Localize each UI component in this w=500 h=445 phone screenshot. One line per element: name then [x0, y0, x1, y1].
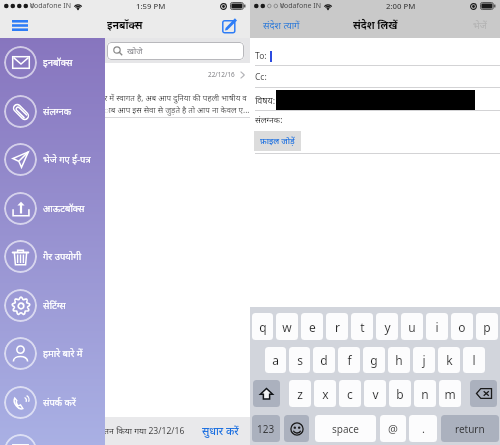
staticText: j — [422, 352, 426, 368]
button[interactable]: सेटिंग्स — [0, 282, 105, 328]
staticText: o — [458, 319, 466, 335]
button[interactable]: फ़ाइल जोड़ें — [254, 131, 301, 151]
button[interactable]: Return — [441, 415, 499, 442]
button[interactable]: b — [389, 380, 411, 407]
staticText: . — [422, 421, 425, 436]
staticText: f — [347, 352, 352, 368]
button[interactable]: Emoji — [284, 415, 309, 442]
staticText: भेजें — [473, 19, 487, 32]
button[interactable]: संलग्नक — [0, 88, 105, 134]
staticText: 1:59 PM — [136, 1, 166, 12]
button[interactable]: l — [463, 347, 485, 373]
staticText: संलग्नक — [43, 105, 72, 118]
staticText: n — [421, 386, 429, 402]
staticText: गैर उपयोगी — [43, 250, 82, 263]
button[interactable]: p — [476, 313, 498, 340]
button[interactable]: Shift — [253, 380, 280, 407]
button[interactable]: संपर्क करें — [0, 379, 105, 425]
staticText: संलग्नक: — [255, 114, 283, 126]
button[interactable] — [0, 427, 105, 445]
button[interactable]: सुधार करें — [202, 424, 239, 438]
button[interactable]: z — [289, 380, 311, 407]
button[interactable]: x — [314, 380, 336, 407]
button[interactable]: Compose — [219, 15, 239, 35]
button[interactable]: m — [439, 380, 461, 407]
staticText: y — [384, 319, 391, 335]
staticText: q — [259, 319, 267, 335]
staticText: र में स्वागत है, अब आप दुनिया की पहली भा… — [104, 92, 247, 103]
staticText: a — [272, 352, 279, 368]
button[interactable]: q — [252, 313, 273, 340]
staticText: भेजे गए ई-पत्र — [43, 153, 91, 166]
button[interactable]: h — [388, 347, 410, 373]
button[interactable]: @ — [380, 415, 406, 442]
staticText: h — [395, 352, 403, 368]
button[interactable]: w — [276, 313, 298, 340]
button[interactable]: 22/12/16 — [0, 63, 250, 118]
staticText: r — [335, 319, 340, 335]
button[interactable]: Numbers — [252, 415, 280, 442]
staticText: Cc: — [255, 71, 267, 83]
staticText: p — [483, 319, 491, 335]
button[interactable]: आऊटबॉक्स — [0, 185, 105, 231]
button[interactable]: j — [413, 347, 435, 373]
staticText: d — [320, 352, 328, 368]
staticText: t — [360, 319, 365, 335]
staticText: हमारे बारे में — [43, 347, 83, 360]
staticText: g — [370, 352, 378, 368]
button[interactable]: k — [438, 347, 460, 373]
button[interactable]: Menu — [8, 13, 32, 37]
staticText: @ — [388, 421, 398, 436]
button[interactable]: भेजे गए ई-पत्र — [0, 136, 105, 182]
button[interactable]: c — [339, 380, 361, 407]
staticText: z — [297, 386, 303, 402]
button[interactable]: o — [451, 313, 473, 340]
staticText: space — [332, 422, 359, 436]
staticText: i — [435, 319, 439, 335]
button[interactable]: f — [338, 347, 360, 373]
button[interactable]: r — [326, 313, 348, 340]
button[interactable]: खोजे — [107, 42, 244, 60]
staticText: तन किया गया 23/12/16 — [104, 425, 185, 437]
staticText: v — [372, 386, 379, 402]
button[interactable]: e — [301, 313, 323, 340]
staticText: संदेश लिखें — [353, 18, 398, 32]
staticText: k — [446, 352, 453, 368]
staticText: u — [408, 319, 416, 335]
staticText: w — [282, 319, 292, 335]
staticText: Vodafone IN — [280, 1, 321, 11]
staticText: s — [297, 352, 303, 368]
button[interactable]: . — [409, 415, 437, 442]
button[interactable]: t — [351, 313, 373, 340]
button[interactable]: गैर उपयोगी — [0, 233, 105, 279]
button[interactable]: a — [265, 347, 286, 373]
button[interactable]: g — [363, 347, 385, 373]
button[interactable]: भेजें — [473, 19, 487, 32]
staticText: l — [472, 352, 476, 368]
staticText: return — [455, 422, 485, 436]
button[interactable]: u — [401, 313, 423, 340]
staticText: b — [396, 386, 404, 402]
button[interactable]: y — [376, 313, 398, 340]
button[interactable]: संदेश त्यागें — [263, 19, 300, 32]
staticText: खोजे — [127, 45, 143, 57]
button[interactable]: d — [313, 347, 335, 373]
button[interactable]: space — [315, 415, 376, 442]
button[interactable]: i — [426, 313, 448, 340]
staticText: x — [322, 386, 329, 402]
staticText: e — [309, 319, 316, 335]
button[interactable]: हमारे बारे में — [0, 330, 105, 376]
button[interactable]: Backspace — [470, 380, 497, 407]
button[interactable]: n — [414, 380, 436, 407]
staticText: 123 — [257, 422, 275, 436]
staticText: फ़ाइल जोड़ें — [260, 135, 295, 147]
button[interactable]: s — [289, 347, 310, 373]
button[interactable]: इनबॉक्स — [0, 39, 105, 85]
staticText: c — [347, 386, 353, 402]
staticText: संदेश त्यागें — [263, 19, 300, 32]
staticText: 22/12/16 — [208, 70, 235, 79]
button[interactable]: v — [364, 380, 386, 407]
staticText: To: — [255, 50, 267, 62]
staticText: ाब आप इस सेवा से जुड़ते है तो आप ना केवल… — [104, 104, 250, 115]
staticText: 2:00 PM — [386, 1, 416, 12]
